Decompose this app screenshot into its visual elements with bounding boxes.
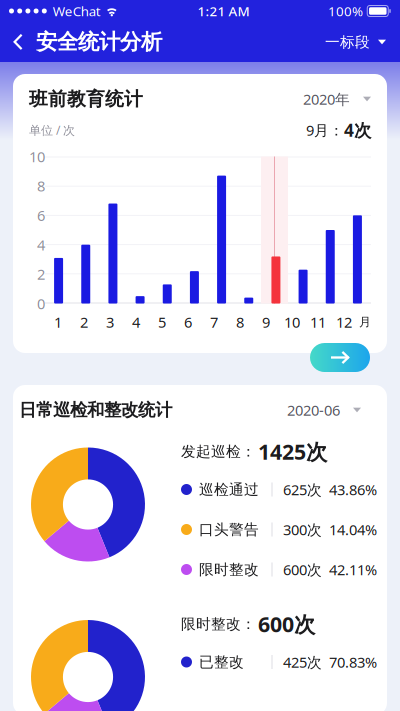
button[interactable]: 2020-06 (287, 398, 361, 422)
staticText: 安全统计分析 (36, 29, 162, 55)
staticText: 2 (80, 312, 88, 332)
staticText: 2020-06 (287, 400, 340, 420)
staticText: 1425次 (258, 437, 327, 466)
staticText: 口头警告 (199, 520, 259, 538)
staticText: 1:21 AM (197, 2, 249, 20)
button[interactable]: 2020年 (303, 87, 371, 111)
staticText: WeChat (53, 2, 101, 20)
staticText: 4 (132, 312, 140, 332)
staticText: 月 (359, 315, 371, 329)
staticText: 10 (29, 147, 45, 166)
staticText: 7 (210, 312, 218, 332)
staticText: 10 (284, 312, 300, 332)
staticText: 100% (328, 2, 363, 20)
staticText: 43.86% (329, 480, 377, 499)
staticText: 班前教育统计 (29, 87, 143, 110)
button[interactable]: Back (0, 22, 36, 62)
staticText: 6 (184, 312, 192, 332)
button[interactable]: Next (310, 343, 370, 372)
staticText: 4 (37, 235, 45, 254)
staticText: 300次 (283, 520, 322, 539)
staticText: 42.11% (329, 560, 377, 579)
staticText: 9 (262, 312, 270, 332)
staticText: 600次 (283, 560, 322, 579)
staticText: 发起巡检： (181, 442, 256, 460)
staticText: 6 (37, 206, 45, 225)
staticText: 600次 (258, 610, 315, 638)
staticText: 12 (336, 312, 352, 332)
staticText: 11 (310, 312, 326, 332)
staticText: 1 (54, 312, 62, 332)
staticText: 8 (236, 312, 244, 332)
staticText: 70.83% (329, 652, 377, 672)
staticText: 限时整改 (199, 560, 259, 578)
staticText: 14.04% (329, 520, 377, 539)
staticText: 巡检通过 (199, 480, 259, 498)
staticText: 4次 (344, 118, 371, 141)
staticText: 限时整改： (181, 615, 256, 633)
staticText: 5 (158, 312, 166, 332)
staticText: 2020年 (303, 89, 350, 109)
staticText: 日常巡检和整改统计 (19, 399, 172, 421)
button[interactable]: 一标段 (311, 22, 400, 62)
staticText: 0 (37, 294, 45, 313)
staticText: 一标段 (325, 33, 370, 51)
staticText: 9月： (306, 120, 344, 140)
staticText: 8 (37, 176, 45, 196)
staticText: 已整改 (199, 653, 244, 671)
staticText: 425次 (283, 652, 322, 672)
staticText: 3 (106, 312, 114, 332)
staticText: 单位 / 次 (29, 122, 75, 138)
staticText: 625次 (283, 480, 322, 499)
staticText: 2 (37, 264, 45, 284)
